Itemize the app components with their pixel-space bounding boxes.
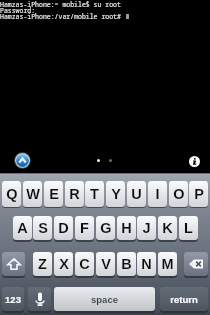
button[interactable]: O — [169, 181, 188, 207]
button[interactable]: V — [96, 252, 115, 276]
staticText: V — [101, 256, 111, 272]
button[interactable]: R — [65, 181, 84, 207]
staticText: Z — [38, 256, 47, 272]
staticText: L — [184, 220, 193, 236]
staticText: Hamzas-iPhone:~ mobile$ su root — [0, 0, 121, 9]
staticText: D — [58, 220, 69, 236]
staticText: Password: — [0, 6, 36, 15]
button[interactable]: space — [54, 287, 155, 311]
staticText: G — [100, 220, 112, 236]
staticText: 123 — [5, 294, 21, 305]
button[interactable]: B — [117, 252, 136, 276]
staticText: O — [173, 186, 185, 202]
button[interactable]: D — [54, 216, 73, 240]
button[interactable]: return — [160, 287, 208, 311]
button[interactable]: L — [179, 216, 198, 240]
staticText: Y — [111, 186, 121, 202]
button[interactable]: Q — [2, 181, 21, 207]
button[interactable]: U — [127, 181, 146, 207]
button[interactable]: Y — [106, 181, 125, 207]
staticText: space — [91, 294, 118, 305]
button[interactable]: G — [96, 216, 115, 240]
button[interactable]: N — [137, 252, 156, 276]
button[interactable]: A — [13, 216, 32, 240]
button[interactable]: W — [23, 181, 42, 207]
button[interactable]: Info — [189, 156, 200, 167]
button[interactable]: Shift — [2, 252, 25, 276]
button[interactable]: I — [148, 181, 167, 207]
staticText: N — [141, 256, 152, 272]
staticText: U — [131, 186, 142, 202]
staticText: W — [26, 186, 40, 202]
button[interactable]: E — [44, 181, 63, 207]
staticText: A — [17, 220, 28, 236]
staticText: S — [38, 220, 48, 236]
button[interactable]: C — [75, 252, 94, 276]
button[interactable]: Z — [33, 252, 52, 276]
staticText: C — [79, 256, 90, 272]
staticText: R — [69, 186, 80, 202]
staticText: P — [194, 186, 204, 202]
button[interactable]: F — [75, 216, 94, 240]
button[interactable]: T — [85, 181, 104, 207]
staticText: Q — [6, 186, 18, 202]
staticText: M — [161, 256, 174, 272]
button[interactable]: 123 — [2, 287, 24, 311]
staticText: I — [155, 186, 160, 202]
button[interactable]: X — [54, 252, 73, 276]
staticText: T — [90, 186, 99, 202]
staticText: X — [59, 256, 69, 272]
button[interactable]: P — [189, 181, 208, 207]
button[interactable]: S — [33, 216, 52, 240]
staticText: F — [80, 220, 89, 236]
staticText: return — [170, 294, 198, 305]
staticText: H — [121, 220, 132, 236]
button[interactable]: K — [158, 216, 177, 240]
button[interactable]: J — [137, 216, 156, 240]
staticText: Hamzas-iPhone:/var/mobile root# — [0, 12, 125, 21]
staticText: J — [142, 220, 151, 236]
staticText: B — [121, 256, 132, 272]
button[interactable]: H — [117, 216, 136, 240]
staticText: E — [49, 186, 59, 202]
button[interactable]: Dictate — [28, 287, 51, 311]
button[interactable]: M — [158, 252, 177, 276]
button[interactable]: Scroll up — [14, 152, 31, 169]
button[interactable]: Backspace — [184, 252, 208, 276]
staticText: K — [162, 220, 173, 236]
